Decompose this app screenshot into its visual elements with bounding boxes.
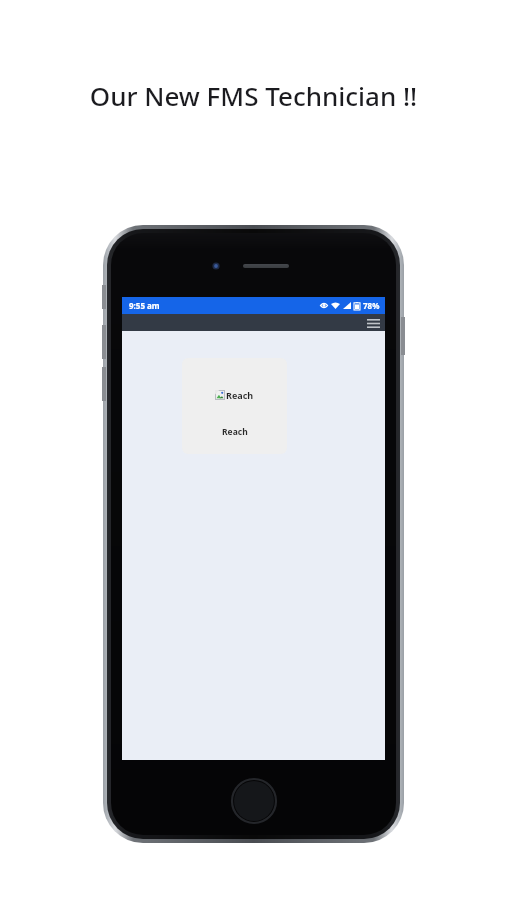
staticText: 78%	[363, 300, 380, 311]
staticText: 9:55 am	[129, 300, 160, 311]
button[interactable]: Reach	[182, 358, 287, 454]
staticText: Reach	[222, 426, 248, 438]
staticText: Our New FMS Technician !!	[0, 78, 507, 113]
button[interactable]: Open navigation menu	[365, 316, 381, 330]
staticText: Reach	[226, 389, 254, 401]
